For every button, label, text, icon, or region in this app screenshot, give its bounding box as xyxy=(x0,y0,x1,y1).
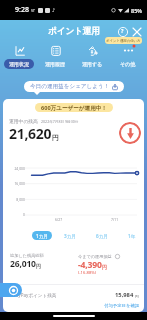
staticText: 600万ユーザーが運用中！ xyxy=(41,104,107,112)
staticText: -4,390 xyxy=(78,259,102,271)
button[interactable]: 運用する xyxy=(75,45,109,69)
staticText: 付与予定日を確認 xyxy=(104,303,140,309)
button[interactable]: ヘルプ xyxy=(116,25,129,38)
staticText: 運用履歴 xyxy=(45,61,65,67)
button[interactable]: 引き出す xyxy=(119,122,141,144)
staticText: 0 xyxy=(4,212,25,217)
staticText: 26,010 xyxy=(10,258,36,270)
staticText: 21,620 xyxy=(9,124,52,143)
staticText: 85% xyxy=(131,7,142,14)
staticText: ポイント運用 xyxy=(48,26,100,37)
staticText: 3カ月 xyxy=(64,233,76,239)
staticText: 今までの運用損益 xyxy=(78,254,112,259)
button[interactable]: 1年 xyxy=(124,231,140,240)
staticText: (-16.88%) xyxy=(78,270,97,276)
staticText: 1年 xyxy=(128,233,136,239)
staticText: 6カ月 xyxy=(96,233,108,239)
staticText: vr xyxy=(31,7,36,13)
staticText: その他 xyxy=(120,61,136,67)
button[interactable]: 1カ月 xyxy=(32,231,52,240)
staticText: 円 xyxy=(52,134,59,142)
staticText: ♪ xyxy=(52,7,56,13)
button[interactable]: その他 xyxy=(111,45,145,69)
staticText: 追加した残高総額 xyxy=(10,253,44,258)
button[interactable]: 3カ月 xyxy=(60,231,80,240)
staticText: 15,984 xyxy=(115,291,134,299)
staticText: ? xyxy=(121,28,124,35)
staticText: 運用する xyxy=(82,61,103,67)
staticText: 円 xyxy=(135,294,139,299)
staticText: 24,000 xyxy=(4,166,25,171)
staticText: 9:28 xyxy=(15,5,29,15)
button[interactable]: 運用履歴 xyxy=(38,45,72,69)
staticText: 16,000 xyxy=(4,181,25,186)
button[interactable]: ポイント運用の使い方 xyxy=(105,37,142,44)
staticText: 1カ月 xyxy=(36,233,48,239)
staticText: ポイント運用の使い方 xyxy=(106,39,141,43)
staticText: 7/11 xyxy=(111,217,119,222)
staticText: 8,000 xyxy=(4,197,25,202)
button[interactable]: 運用状況 xyxy=(2,45,36,69)
staticText: 2022年7月8日 9時30分 xyxy=(41,119,79,124)
staticText: 円 xyxy=(102,264,107,270)
button[interactable]: 説明 xyxy=(114,253,120,259)
button[interactable]: 今日の運用益をシェアしよう！ xyxy=(24,81,124,92)
staticText: 運用中の残高 xyxy=(9,118,38,124)
staticText: 円 xyxy=(36,263,41,269)
staticText: 今日の運用益をシェアしよう！ xyxy=(30,83,110,90)
staticText: 運用状況 xyxy=(9,61,29,67)
button[interactable]: 付与予定日を確認 xyxy=(104,303,140,309)
button[interactable]: 6カ月 xyxy=(92,231,112,240)
staticText: PayPayポイント残高 xyxy=(13,292,57,298)
button[interactable]: 閉じる xyxy=(130,25,143,38)
staticText: 6/27 xyxy=(55,217,63,222)
